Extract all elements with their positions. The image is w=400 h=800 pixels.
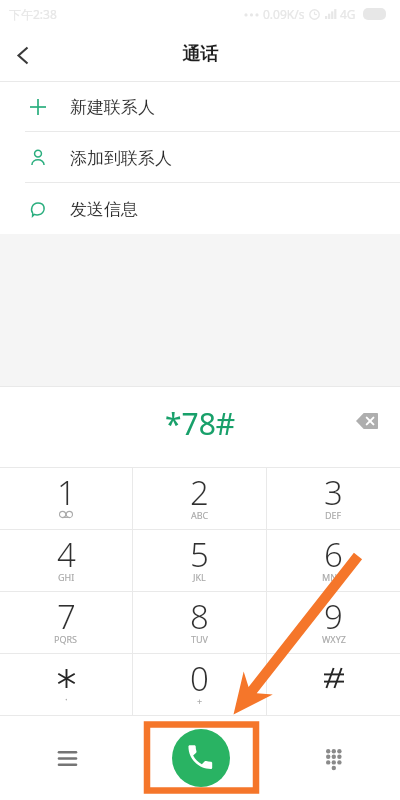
button[interactable]: 2 [133, 468, 266, 529]
staticText: GHI [58, 571, 75, 583]
button[interactable]: 0 [133, 654, 266, 715]
staticText: MNO [322, 571, 345, 583]
staticText: PQRS [54, 633, 78, 645]
button[interactable]: Backspace [345, 399, 389, 443]
staticText: *78# [165, 403, 236, 444]
button[interactable]: Dialpad [267, 716, 400, 800]
staticText: 6 [324, 532, 343, 577]
staticText: 4 [57, 532, 76, 577]
staticText: 下午2:38 [9, 6, 57, 22]
staticText: 3 [324, 470, 343, 515]
staticText: 4G [340, 6, 356, 22]
button[interactable]: 4 [0, 530, 132, 591]
staticText: 新建联系人 [70, 97, 155, 118]
staticText: 1 [57, 470, 76, 515]
staticText: 0.09K/s [263, 6, 305, 22]
staticText: JKL [193, 571, 206, 583]
button[interactable]: 5 [133, 530, 266, 591]
button[interactable]: Menu [0, 716, 134, 800]
staticText: 发送信息 [70, 199, 138, 220]
button[interactable]: 3 [267, 468, 400, 529]
staticText: 0 [190, 656, 209, 701]
button[interactable] [267, 654, 400, 715]
staticText: · [65, 692, 68, 706]
staticText: WXYZ [322, 633, 346, 645]
staticText: DEF [325, 509, 342, 521]
button[interactable]: · [0, 654, 132, 715]
button[interactable]: 新建联系人 [0, 82, 400, 131]
staticText: 2 [190, 470, 209, 515]
staticText: 添加到联系人 [70, 148, 172, 169]
button[interactable]: 发送信息 [0, 183, 400, 234]
button[interactable]: 7 [0, 592, 132, 653]
button[interactable]: 1 [0, 468, 132, 529]
button[interactable]: 8 [133, 592, 266, 653]
button[interactable]: Call [134, 716, 267, 800]
staticText: ABC [191, 509, 209, 521]
button[interactable]: Back [0, 32, 46, 78]
staticText: 7 [57, 594, 76, 639]
button[interactable]: 6 [267, 530, 400, 591]
staticText: 9 [324, 594, 343, 639]
button[interactable]: 9 [267, 592, 400, 653]
staticText: 通话 [182, 43, 218, 66]
staticText: + [197, 695, 203, 707]
staticText: TUV [191, 633, 208, 645]
staticText: 8 [190, 594, 209, 639]
staticText: 5 [190, 532, 209, 577]
button[interactable]: 添加到联系人 [0, 132, 400, 182]
